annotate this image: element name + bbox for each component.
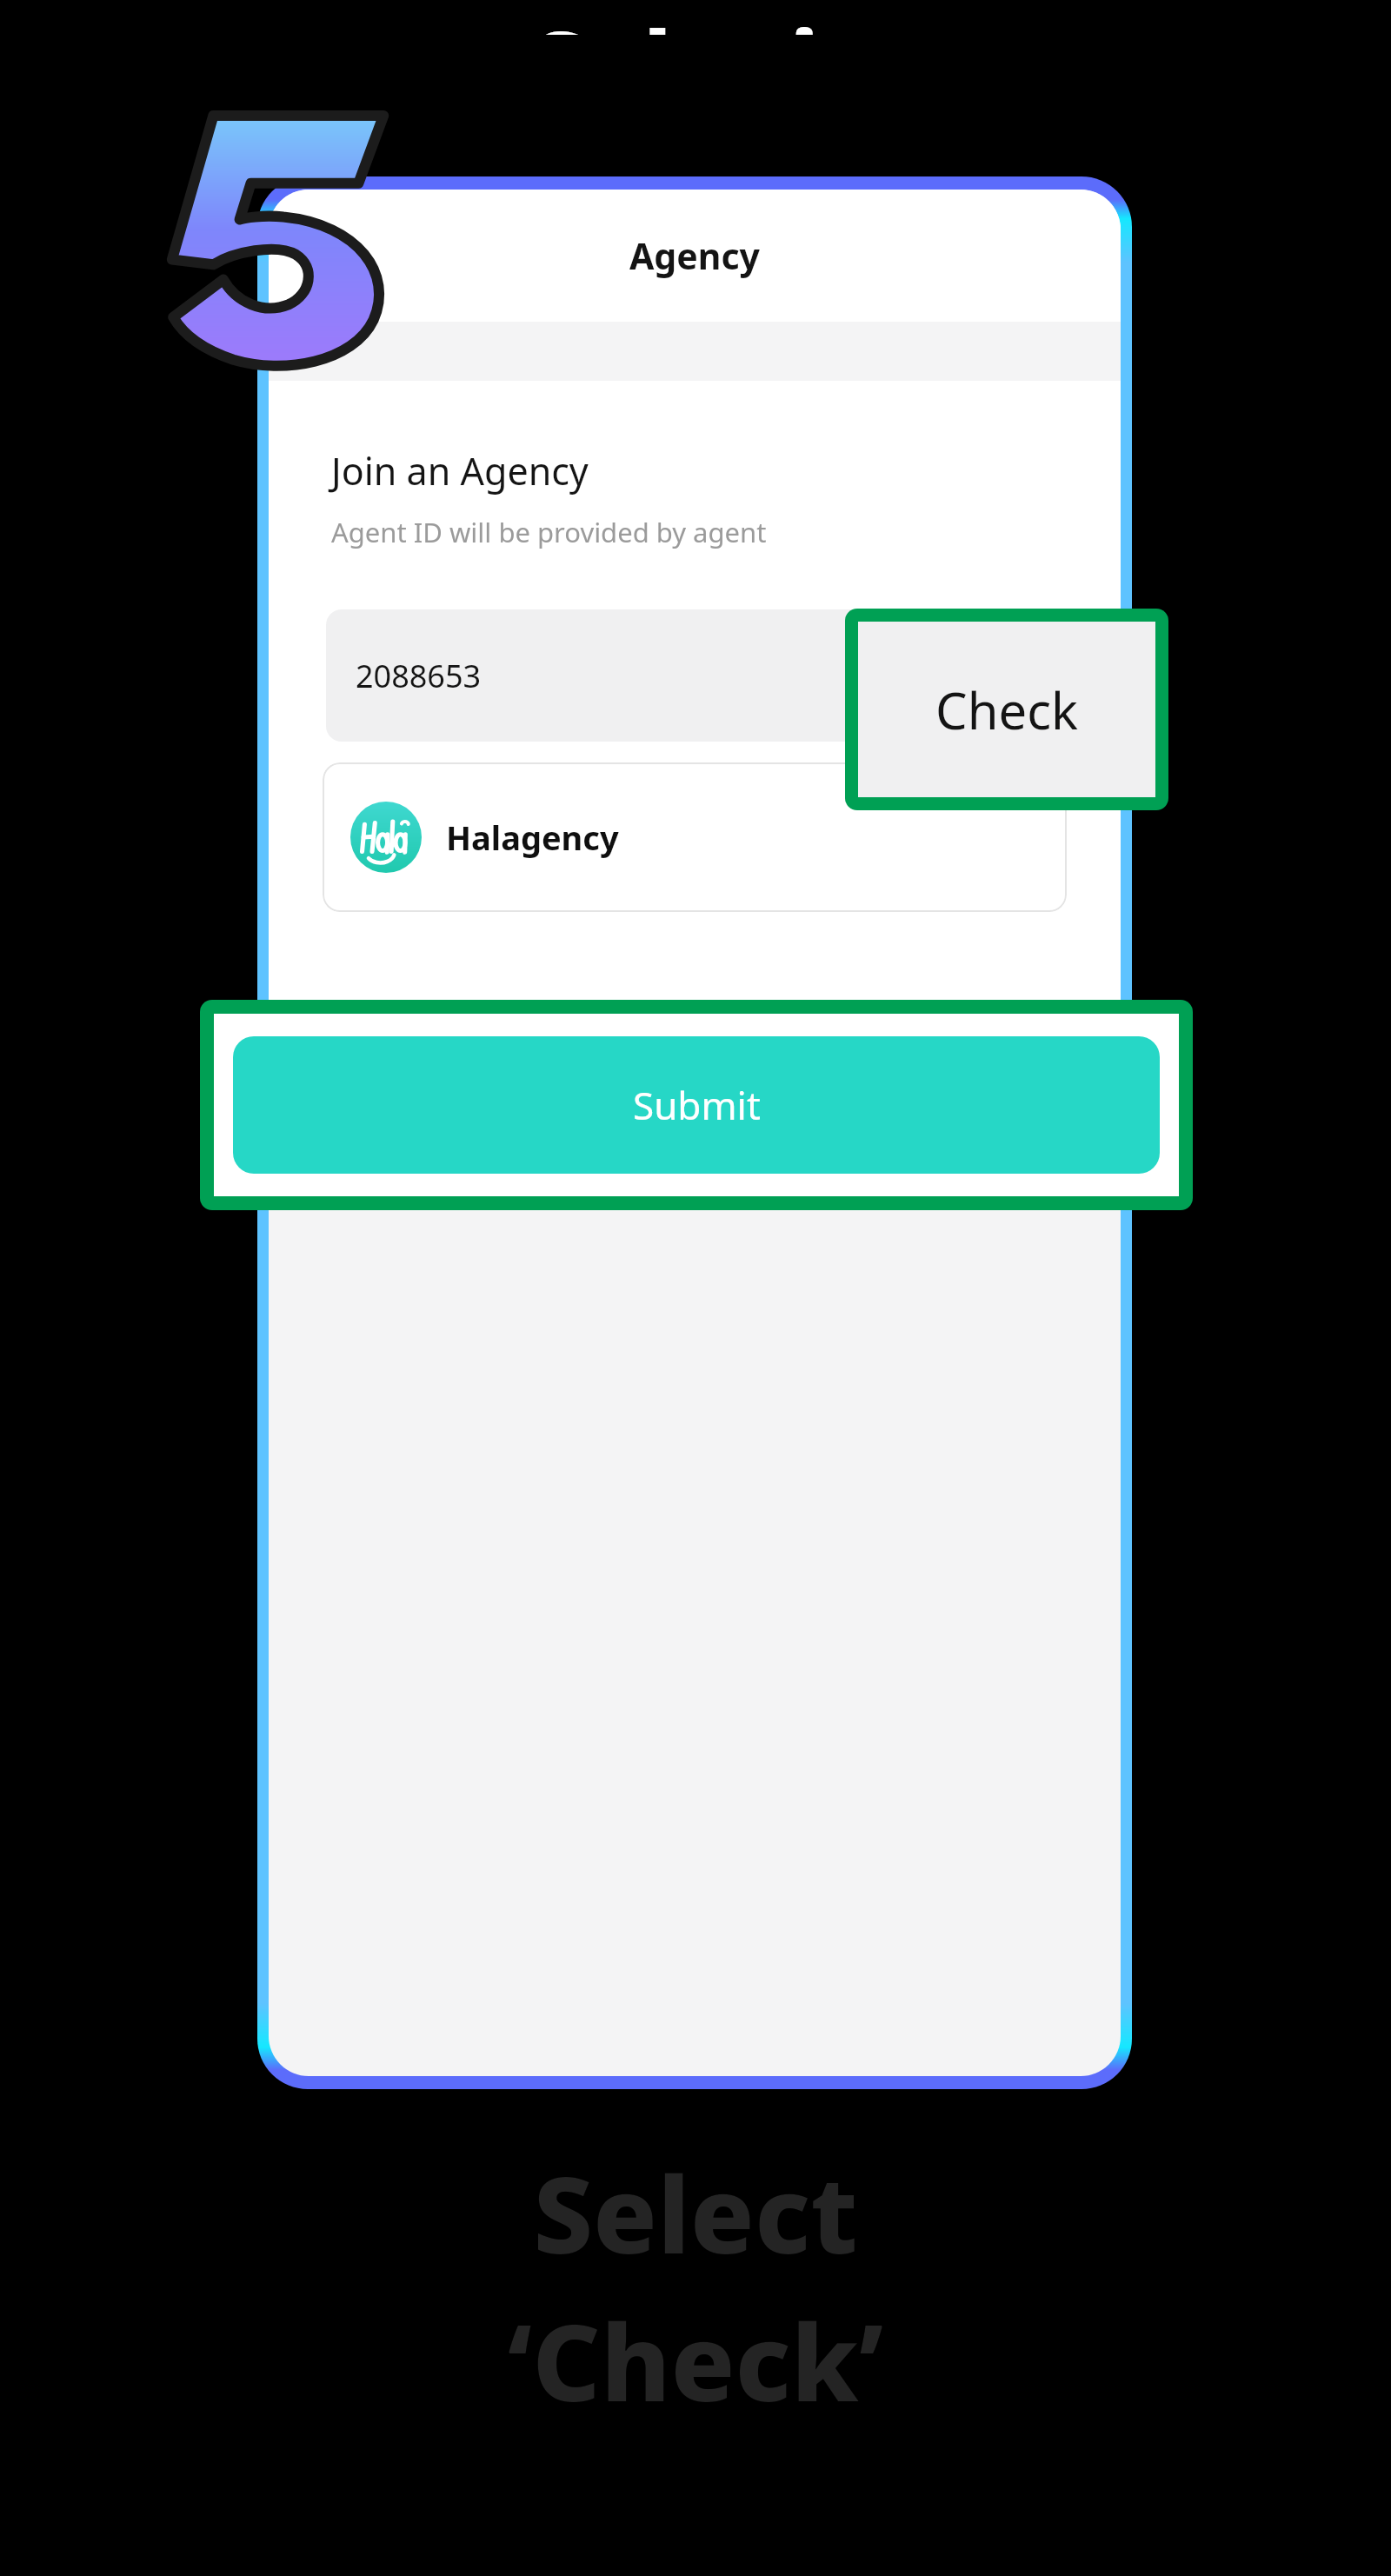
staticText: 2088653 xyxy=(356,655,482,697)
other: Halagency logo xyxy=(350,802,422,873)
staticText: Check xyxy=(935,676,1079,744)
staticText: Submit xyxy=(633,1079,761,1131)
staticText: Agency xyxy=(629,231,760,280)
staticText: Agent ID will be provided by agent xyxy=(331,514,767,550)
button[interactable]: Submit xyxy=(233,1036,1160,1174)
staticText: Submit xyxy=(533,0,859,35)
button[interactable]: 2088653 xyxy=(326,609,1063,742)
staticText: Join an Agency xyxy=(331,445,589,496)
staticText: Halagency xyxy=(446,815,619,860)
staticText: Select xyxy=(533,2140,858,2285)
button[interactable]: Halagency logo xyxy=(323,762,1067,912)
staticText: ‘Check’ xyxy=(508,2288,883,2433)
button[interactable]: Check xyxy=(858,622,1155,797)
